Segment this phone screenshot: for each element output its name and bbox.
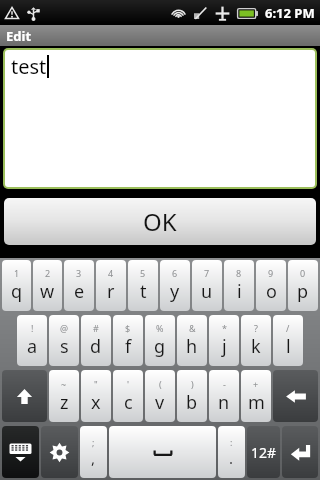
staticText: * xyxy=(222,322,227,334)
button[interactable]: $ xyxy=(113,315,143,366)
staticText: 7 xyxy=(204,267,210,279)
button[interactable]: ' xyxy=(113,370,143,422)
button[interactable]: @ xyxy=(49,315,79,366)
staticText: f xyxy=(125,334,132,359)
staticText: z xyxy=(60,390,69,415)
staticText: 5 xyxy=(140,267,146,279)
staticText: @ xyxy=(60,322,69,334)
staticText: i xyxy=(237,279,242,304)
button[interactable]: % xyxy=(145,315,175,366)
button[interactable]: 7 xyxy=(192,260,222,311)
staticText: j xyxy=(222,334,227,359)
button[interactable]: " xyxy=(81,370,111,422)
staticText: $ xyxy=(125,322,131,334)
staticText: e xyxy=(74,279,85,304)
staticText: k xyxy=(251,334,261,359)
button[interactable]: ( xyxy=(145,370,175,422)
button[interactable]: Space xyxy=(109,426,216,478)
button[interactable]: Symbols xyxy=(247,426,280,478)
staticText: v xyxy=(155,390,165,415)
button[interactable]: Enter xyxy=(282,426,318,478)
staticText: h xyxy=(186,334,198,359)
staticText: n xyxy=(218,390,230,415)
button[interactable]: 8 xyxy=(224,260,254,311)
staticText: - xyxy=(223,378,226,390)
staticText: ; xyxy=(92,436,95,448)
button[interactable]: * xyxy=(209,315,239,366)
button[interactable]: 0 xyxy=(288,260,318,311)
staticText: + xyxy=(253,378,259,390)
staticText: 6 xyxy=(172,267,178,279)
staticText: 6:12 PM xyxy=(265,4,315,22)
staticText: ? xyxy=(254,322,258,334)
button[interactable]: ? xyxy=(241,315,271,366)
staticText: , xyxy=(91,448,96,468)
staticText: 12# xyxy=(251,443,277,462)
button[interactable]: 6 xyxy=(160,260,190,311)
staticText: x xyxy=(91,390,101,415)
button[interactable]: Hide keyboard xyxy=(2,426,39,478)
staticText: p xyxy=(297,279,309,304)
button[interactable]: Backspace xyxy=(273,370,318,422)
staticText: 1 xyxy=(14,267,20,279)
staticText: . xyxy=(229,448,234,468)
staticText: w xyxy=(40,279,55,304)
staticText: ! xyxy=(31,322,34,334)
button[interactable]: Settings xyxy=(41,426,78,478)
button[interactable]: ) xyxy=(177,370,207,422)
staticText: u xyxy=(201,279,213,304)
staticText: / xyxy=(286,322,290,334)
button[interactable]: # xyxy=(81,315,111,366)
staticText: 3 xyxy=(76,267,82,279)
staticText: Edit xyxy=(6,27,32,45)
button[interactable]: 5 xyxy=(128,260,158,311)
staticText: r xyxy=(107,279,115,304)
button[interactable]: Shift xyxy=(2,370,47,422)
staticText: test xyxy=(11,53,47,80)
staticText: m xyxy=(248,390,265,415)
staticText: OK xyxy=(143,205,177,238)
staticText: 2 xyxy=(45,267,51,279)
staticText: 9 xyxy=(268,267,274,279)
button[interactable]: : xyxy=(218,426,245,478)
button[interactable]: 1 xyxy=(2,260,31,311)
staticText: ~ xyxy=(61,378,67,390)
button[interactable]: OK xyxy=(4,198,316,245)
staticText: ) xyxy=(191,378,194,390)
button[interactable]: & xyxy=(177,315,207,366)
staticText: 0 xyxy=(300,267,306,279)
button[interactable]: + xyxy=(241,370,271,422)
button[interactable]: ~ xyxy=(49,370,79,422)
staticText: y xyxy=(170,279,180,304)
button[interactable]: 2 xyxy=(33,260,62,311)
staticText: d xyxy=(90,334,102,359)
button[interactable]: 3 xyxy=(64,260,94,311)
staticText: a xyxy=(27,334,38,359)
staticText: 8 xyxy=(236,267,242,279)
staticText: % xyxy=(156,322,164,334)
button[interactable]: ; xyxy=(80,426,107,478)
staticText: c xyxy=(124,390,133,415)
staticText: q xyxy=(11,279,23,304)
staticText: # xyxy=(93,322,99,334)
staticText: l xyxy=(286,334,291,359)
button[interactable]: 4 xyxy=(96,260,126,311)
staticText: : xyxy=(230,436,233,448)
staticText: & xyxy=(189,322,196,334)
button[interactable]: - xyxy=(209,370,239,422)
staticText: o xyxy=(266,279,277,304)
staticText: " xyxy=(94,378,98,390)
staticText: ( xyxy=(159,378,162,390)
staticText: g xyxy=(154,334,166,359)
staticText: 4 xyxy=(108,267,114,279)
button[interactable]: / xyxy=(273,315,303,366)
staticText: s xyxy=(60,334,69,359)
staticText: t xyxy=(140,279,147,304)
button[interactable]: test xyxy=(5,50,315,187)
button[interactable]: 9 xyxy=(256,260,286,311)
staticText: ' xyxy=(127,378,130,390)
button[interactable]: ! xyxy=(17,315,47,366)
staticText: b xyxy=(186,390,198,415)
